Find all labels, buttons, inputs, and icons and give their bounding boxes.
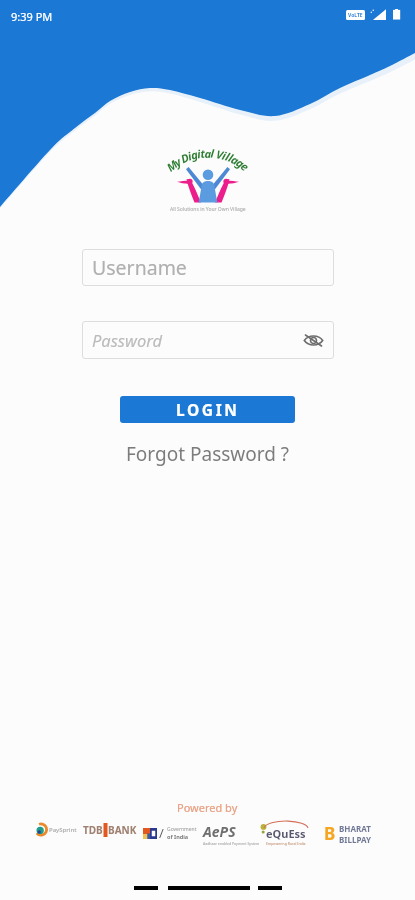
staticText: Forgot Password ? xyxy=(126,441,290,467)
staticText: AePS xyxy=(203,822,236,841)
staticText: eQuEss xyxy=(266,826,306,841)
staticText: of India xyxy=(167,833,189,840)
staticText: / xyxy=(159,824,164,842)
staticText: LOGIN xyxy=(176,399,240,420)
staticText: Empowering Rural India xyxy=(266,841,306,846)
staticText: Username xyxy=(92,254,187,281)
staticText: Aadhaar enabled Payment System xyxy=(203,841,260,846)
staticText: 9:39 PM xyxy=(11,9,53,24)
staticText: BANK xyxy=(108,823,137,837)
staticText: Password xyxy=(92,329,162,351)
staticText: All Solutions in Your Own Village xyxy=(170,206,246,213)
staticText: PaySprint xyxy=(49,826,77,834)
button[interactable]: LOGIN xyxy=(120,396,295,423)
staticText: VoLTE xyxy=(348,12,363,19)
button[interactable]: Password xyxy=(82,321,334,359)
staticText: TDB xyxy=(83,823,103,837)
staticText: B xyxy=(324,822,336,845)
button[interactable]: Username xyxy=(82,249,334,286)
staticText: Powered by xyxy=(177,800,238,815)
staticText: BHARAT xyxy=(339,823,371,834)
button[interactable]: Forgot Password ? xyxy=(120,438,296,470)
button[interactable]: Show password xyxy=(302,329,325,352)
staticText: Government xyxy=(167,826,197,833)
staticText: BILLPAY xyxy=(339,834,372,845)
